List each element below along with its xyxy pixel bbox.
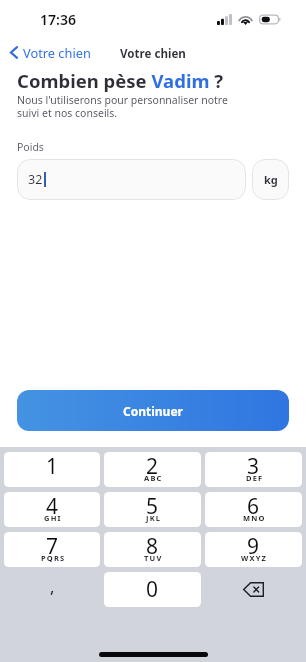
staticText: TUV — [144, 553, 163, 563]
staticText: MNO — [243, 513, 266, 523]
staticText: 8 — [146, 532, 159, 561]
staticText: 4 — [46, 492, 59, 521]
button[interactable]: 3 — [205, 452, 302, 487]
staticText: 5 — [146, 492, 159, 521]
button[interactable]: 5 — [104, 492, 201, 527]
staticText: ABC — [144, 473, 163, 483]
button[interactable]: Votre chien — [0, 41, 99, 64]
staticText: 17:36 — [40, 10, 76, 29]
staticText: JKL — [146, 513, 162, 523]
button[interactable]: Continuer — [17, 390, 289, 431]
button[interactable]: 7 — [4, 532, 100, 567]
staticText: kg — [264, 172, 278, 187]
staticText: 1 — [46, 452, 59, 481]
button[interactable]: 4 — [4, 492, 100, 527]
staticText: PQRS — [41, 553, 66, 563]
staticText: Combien pèse Vadim ? — [17, 68, 224, 93]
button[interactable]: 9 — [205, 532, 302, 567]
staticText: 0 — [146, 575, 159, 604]
staticText: Votre chien — [120, 46, 186, 62]
button[interactable]: Delete — [205, 572, 302, 607]
staticText: WXYZ — [241, 553, 268, 563]
button[interactable]: 2 — [104, 452, 201, 487]
staticText: 2 — [146, 452, 159, 481]
button[interactable]: , — [4, 572, 100, 607]
button[interactable]: 1 — [4, 452, 100, 487]
staticText: 9 — [247, 532, 260, 561]
staticText: Nous l'utiliserons pour personnaliser no… — [17, 93, 228, 120]
staticText: GHI — [44, 513, 62, 523]
staticText: 32 — [28, 171, 43, 188]
staticText: Poids — [17, 140, 44, 154]
staticText: 3 — [247, 452, 260, 481]
staticText: Votre chien — [23, 44, 91, 61]
staticText: DEF — [246, 473, 264, 483]
staticText: Continuer — [123, 403, 183, 419]
button[interactable]: 0 — [104, 572, 201, 607]
button[interactable]: 6 — [205, 492, 302, 527]
button[interactable]: kg — [252, 159, 289, 200]
staticText: , — [50, 576, 55, 598]
staticText: 7 — [46, 532, 59, 561]
button[interactable]: 8 — [104, 532, 201, 567]
button[interactable]: 32 — [17, 159, 246, 200]
staticText: 6 — [247, 492, 260, 521]
